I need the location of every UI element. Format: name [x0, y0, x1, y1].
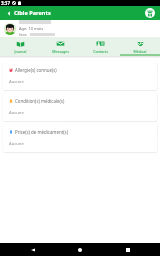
button[interactable]: Messages: [40, 37, 80, 56]
staticText: Prise(s) de médicament(s): [15, 129, 68, 135]
staticText: Cible Parents: [14, 9, 51, 17]
button[interactable]: Contacts: [80, 37, 120, 56]
button[interactable]: Back: [0, 6, 14, 20]
button[interactable]: Allergie(s) connue(s): [3, 62, 157, 90]
button[interactable]: Médical: [120, 37, 160, 56]
button[interactable]: Journal: [0, 37, 40, 56]
staticText: Aucune: [9, 110, 24, 116]
staticText: Journal: [14, 49, 27, 54]
staticText: Aucune: [9, 79, 24, 85]
staticText: Sexe:: [19, 32, 28, 37]
button[interactable]: Account: [145, 8, 155, 18]
button[interactable]: Prise(s) de médicament(s): [3, 124, 157, 152]
staticText: Médical: [133, 49, 147, 54]
staticText: 3:37: [1, 0, 10, 6]
staticText: Age: 10 mois: [19, 26, 44, 31]
button[interactable]: Condition(s) médicale(s): [3, 93, 157, 121]
button[interactable]: Home: [65, 243, 95, 256]
staticText: Aucune: [9, 141, 24, 147]
staticText: Condition(s) médicale(s): [15, 98, 65, 104]
button[interactable]: Recent apps: [113, 243, 143, 256]
staticText: Contacts: [93, 49, 108, 54]
staticText: Allergie(s) connue(s): [15, 67, 57, 73]
button[interactable]: Back: [18, 243, 48, 256]
staticText: Messages: [52, 49, 69, 54]
